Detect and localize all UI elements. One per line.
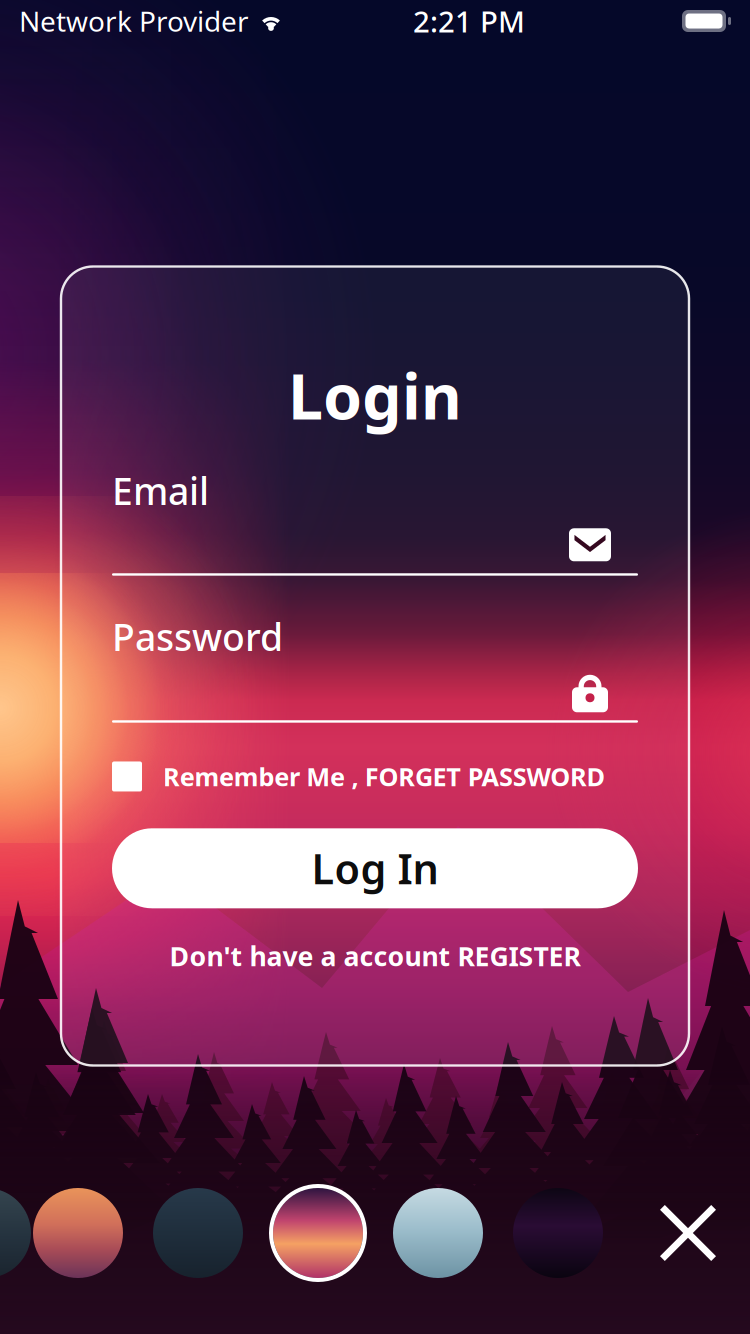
button[interactable]: Wallpaper 3 — [150, 1185, 246, 1281]
button[interactable]: Wallpaper 4, selected — [270, 1185, 366, 1281]
staticText: Password — [112, 612, 283, 661]
staticText: Don't have a account REGISTER — [169, 938, 580, 974]
button[interactable]: Don't have a account REGISTER — [112, 938, 638, 974]
staticText: Network Provider — [19, 2, 249, 40]
button[interactable]: Wallpaper 5 — [390, 1185, 486, 1281]
button[interactable]: Close — [654, 1199, 722, 1267]
staticText: 2:21 PM — [413, 1, 525, 40]
staticText: Email — [112, 466, 209, 515]
staticText: Log In — [311, 841, 438, 896]
button[interactable]: Log In — [112, 828, 638, 908]
staticText: Login — [288, 353, 462, 437]
button[interactable]: Wallpaper 1 — [0, 1185, 34, 1281]
button[interactable]: Remember Me , FORGET PASSWORD — [112, 760, 638, 793]
button[interactable]: Wallpaper 2 — [30, 1185, 126, 1281]
button[interactable]: Wallpaper 6 — [510, 1185, 606, 1281]
staticText: Remember Me , FORGET PASSWORD — [163, 760, 606, 793]
